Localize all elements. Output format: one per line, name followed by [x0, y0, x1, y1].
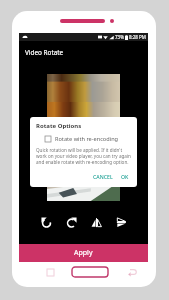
staticText: CANCEL — [93, 173, 113, 180]
button[interactable]: Video Rotate — [19, 41, 148, 63]
button[interactable]: Flip vertical — [111, 212, 131, 232]
staticText: Quick rotation will be applied. If it di… — [36, 147, 131, 165]
staticText: Video Rotate — [25, 48, 64, 57]
staticText: 73% — [115, 34, 124, 40]
staticText: Apply — [74, 248, 93, 258]
button[interactable]: CANCEL — [89, 170, 117, 183]
staticText: Rotate with re-encoding — [55, 135, 119, 143]
button[interactable]: Back — [123, 263, 141, 281]
staticText: 8:28 PM — [129, 34, 146, 40]
staticText: Rotate Options — [36, 122, 82, 130]
button[interactable]: Recents — [41, 263, 59, 281]
button[interactable]: Rotate left — [36, 212, 56, 232]
button[interactable]: Home — [72, 267, 108, 277]
button[interactable]: OK — [117, 170, 133, 183]
staticText: OK — [121, 173, 129, 180]
button[interactable]: Apply — [19, 244, 148, 262]
button[interactable]: Rotate right — [61, 212, 81, 232]
button[interactable]: Flip horizontal — [86, 212, 106, 232]
button[interactable]: Rotate with re-encoding — [30, 133, 137, 144]
